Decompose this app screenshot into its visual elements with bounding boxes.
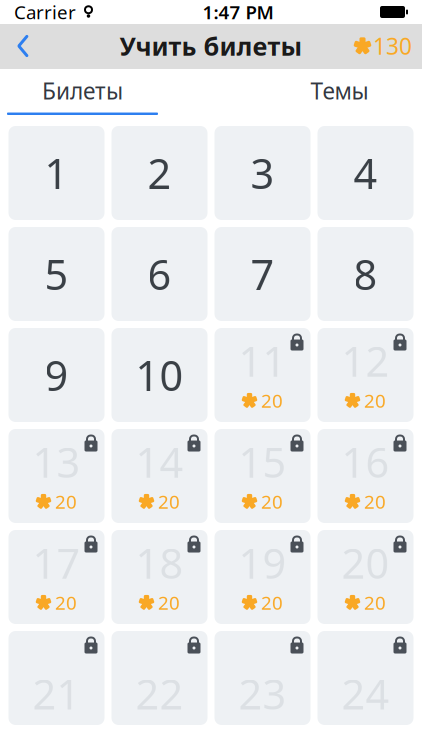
button[interactable]: 11 [214, 328, 310, 422]
staticText: 20 [261, 590, 283, 615]
button[interactable]: 14 [111, 429, 207, 523]
button[interactable]: 22 [111, 631, 207, 725]
staticText: 6 [147, 247, 171, 301]
staticText: 5 [44, 247, 68, 301]
button[interactable]: 3 [214, 126, 310, 220]
staticText: 4 [353, 146, 377, 200]
button[interactable]: 13 [8, 429, 104, 523]
staticText: 20 [364, 489, 386, 514]
button[interactable]: 5 [8, 227, 104, 321]
staticText: 14 [135, 434, 183, 489]
staticText: 23 [238, 666, 286, 721]
staticText: 15 [238, 434, 286, 489]
staticText: 20 [158, 590, 180, 615]
staticText: 20 [341, 535, 389, 590]
staticText: 16 [341, 434, 389, 489]
staticText: Carrier [14, 0, 76, 24]
button[interactable]: 15 [214, 429, 310, 523]
staticText: 10 [135, 348, 183, 402]
staticText: 20 [364, 388, 386, 413]
button[interactable]: 7 [214, 227, 310, 321]
staticText: Билеты [42, 76, 123, 106]
staticText: 12 [341, 333, 389, 388]
button[interactable]: Темы [264, 69, 415, 115]
button[interactable]: 130 [344, 24, 422, 68]
staticText: Темы [310, 76, 368, 106]
staticText: 20 [158, 489, 180, 514]
staticText: 1 [44, 146, 68, 200]
button[interactable]: 10 [111, 328, 207, 422]
staticText: 19 [238, 535, 286, 590]
button[interactable]: Билеты [7, 69, 158, 115]
button[interactable]: 2 [111, 126, 207, 220]
staticText: 130 [373, 31, 412, 61]
staticText: 8 [353, 247, 377, 301]
button[interactable]: 24 [317, 631, 413, 725]
staticText: 2 [147, 146, 171, 200]
staticText: 20 [364, 590, 386, 615]
staticText: 21 [32, 666, 80, 721]
button[interactable]: 8 [317, 227, 413, 321]
button[interactable]: 19 [214, 530, 310, 624]
staticText: 17 [32, 535, 80, 590]
button[interactable]: 20 [317, 530, 413, 624]
button[interactable]: 18 [111, 530, 207, 624]
button[interactable]: 4 [317, 126, 413, 220]
staticText: 22 [135, 666, 183, 721]
button[interactable]: 9 [8, 328, 104, 422]
staticText: 9 [44, 348, 68, 402]
staticText: 20 [55, 590, 77, 615]
staticText: 1:47 PM [202, 0, 273, 24]
staticText: Учить билеты [119, 29, 302, 63]
button[interactable]: 23 [214, 631, 310, 725]
staticText: 24 [341, 666, 389, 721]
staticText: 11 [238, 333, 286, 388]
staticText: 13 [32, 434, 80, 489]
staticText: 3 [250, 146, 274, 200]
button[interactable]: 1 [8, 126, 104, 220]
staticText: 20 [55, 489, 77, 514]
button[interactable]: 16 [317, 429, 413, 523]
staticText: 20 [261, 388, 283, 413]
staticText: 7 [250, 247, 274, 301]
button[interactable]: 12 [317, 328, 413, 422]
button[interactable]: 6 [111, 227, 207, 321]
button[interactable]: 17 [8, 530, 104, 624]
staticText: 18 [135, 535, 183, 590]
button[interactable]: Назад [0, 24, 46, 68]
staticText: 20 [261, 489, 283, 514]
button[interactable]: 21 [8, 631, 104, 725]
